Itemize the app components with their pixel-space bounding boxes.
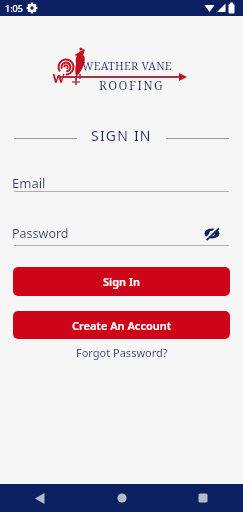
staticText: Password <box>12 225 69 242</box>
staticText: 1:05 <box>5 2 23 14</box>
button[interactable] <box>0 484 81 512</box>
button[interactable] <box>162 484 243 512</box>
button[interactable]: Create An Account <box>13 311 230 339</box>
staticText: Email <box>12 174 46 192</box>
button[interactable]: Sign In <box>13 267 230 296</box>
button[interactable]: Email <box>14 170 229 193</box>
staticText: Sign In <box>103 274 141 289</box>
button[interactable]: Forgot Password? <box>72 343 172 362</box>
staticText: WEATHER VANE <box>82 58 172 73</box>
staticText: ROOFING <box>99 77 165 93</box>
staticText: Create An Account <box>72 318 172 333</box>
button[interactable]: Password <box>14 222 229 246</box>
staticText: SIGN IN <box>91 126 152 145</box>
button[interactable] <box>81 484 162 512</box>
